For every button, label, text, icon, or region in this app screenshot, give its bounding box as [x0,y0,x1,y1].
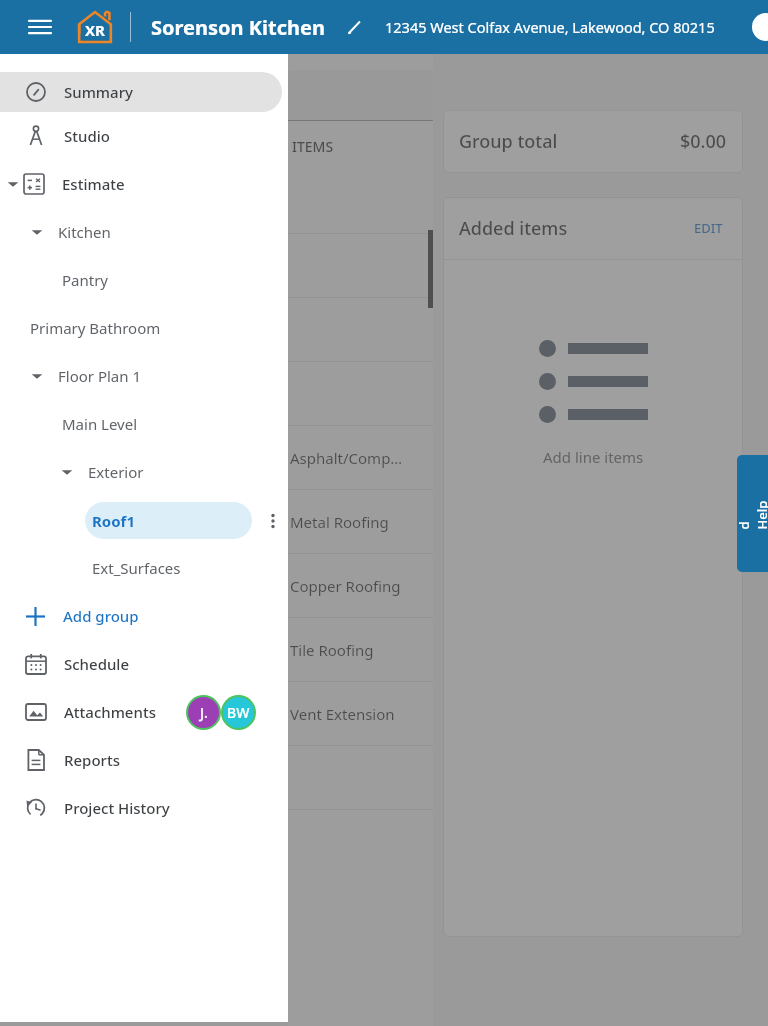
staticText: Vent Extension [290,704,395,724]
staticText: Tile Roofing [290,640,374,660]
button[interactable]: Home [74,6,116,48]
staticText: Ext_Surfaces [92,558,181,578]
button[interactable]: Floor Plan 1 [0,352,288,400]
staticText: Schedule [64,654,129,674]
button[interactable]: Main Level [0,400,288,448]
staticText: $0.00 [680,129,727,154]
staticText: Added items [459,216,568,241]
staticText: Metal Roofing [290,512,389,532]
button[interactable]: Estimate [0,160,288,208]
staticText: Project History [64,798,170,818]
staticText: Primary Bathroom [30,318,161,338]
button[interactable]: Exterior [0,448,288,496]
staticText: Reports [64,750,120,770]
staticText: 12345 West Colfax Avenue, Lakewood, CO 8… [385,17,715,37]
staticText: EDIT [694,219,723,237]
button[interactable]: Roof1 [85,502,252,539]
button[interactable]: Ext_Surfaces [0,544,288,592]
button[interactable]: Project History [0,784,288,832]
staticText: Asphalt/Comp… [290,448,403,468]
button[interactable]: Account [752,13,768,41]
button[interactable]: EDIT [690,215,727,241]
staticText: Sorenson Kitchen [151,14,325,41]
button[interactable]: Schedule [0,640,288,688]
staticText: Copper Roofing [290,576,401,596]
staticText: Roof1 [92,511,135,531]
staticText: Pantry [62,270,109,290]
staticText: BW [227,703,250,722]
staticText: ITEMS [292,137,334,156]
staticText: Main Level [62,414,138,434]
button[interactable]: More options [258,506,288,536]
button[interactable]: Pantry [0,256,288,304]
button[interactable]: Need Help? [737,455,768,572]
staticText: Add line items [543,447,644,467]
staticText: Estimate [62,174,125,194]
staticText: Need Help? [737,498,768,529]
button[interactable]: Edit project name [337,10,371,44]
staticText: Floor Plan 1 [58,366,142,386]
button[interactable]: Primary Bathroom [0,304,288,352]
button[interactable]: Attachments [0,688,288,736]
staticText: Exterior [88,462,144,482]
button[interactable]: Studio [0,112,288,160]
button[interactable]: Add group [0,592,288,640]
staticText: Summary [64,82,133,102]
staticText: Studio [64,126,110,146]
staticText: Group total [459,129,558,154]
staticText: Kitchen [58,222,111,242]
button[interactable]: Summary [0,72,282,112]
staticText: Attachments [64,702,156,722]
button[interactable]: Kitchen [0,208,288,256]
button[interactable]: Reports [0,736,288,784]
staticText: J. [200,703,208,722]
staticText: Add group [63,606,139,626]
staticText: XR [85,20,105,40]
button[interactable]: Menu [18,5,62,49]
